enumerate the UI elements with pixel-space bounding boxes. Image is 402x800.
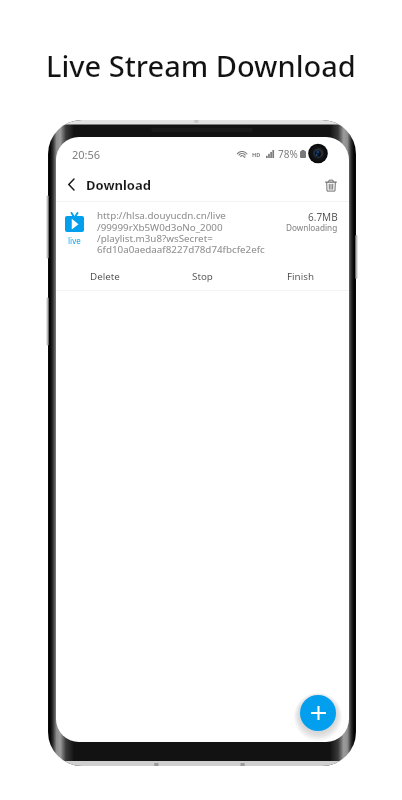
button[interactable]: Finish [251,267,349,285]
button[interactable]: Delete all [321,175,341,195]
button[interactable]: Stop [153,267,251,285]
staticText: 6.7MB [308,210,338,224]
staticText: Finish [287,270,314,283]
staticText: 20:56 [72,147,101,162]
staticText: Live Stream Download [46,46,356,85]
other: Back [64,173,78,195]
button[interactable]: Delete [56,267,153,285]
button[interactable]: Add download [300,695,336,731]
staticText: live [68,235,81,246]
staticText: 78% [278,147,298,161]
staticText: HD [252,151,261,158]
button[interactable]: Back [56,175,151,197]
staticText: http://hlsa.douyucdn.cn/live /99999rXb5W… [97,209,265,256]
staticText: Delete [90,270,120,283]
staticText: Stop [192,270,213,283]
staticText: Downloading [286,222,338,233]
staticText: Download [86,176,151,194]
